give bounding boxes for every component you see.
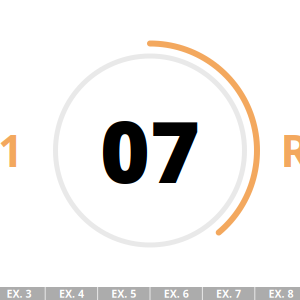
button[interactable]: EX. 5 — [98, 287, 149, 300]
button[interactable]: Previous exercise — [0, 121, 23, 179]
staticText: EX. 4 — [59, 286, 84, 300]
staticText: 07 — [100, 93, 200, 207]
staticText: EX. 8 — [268, 286, 293, 300]
button[interactable]: Next exercise — [280, 121, 300, 179]
staticText: EX. 1 — [0, 121, 23, 179]
staticText: EX. 3 — [6, 286, 31, 300]
staticText: EX. 7 — [216, 286, 241, 300]
button[interactable]: EX. 6 — [150, 287, 202, 300]
button[interactable]: EX. 8 — [255, 287, 300, 300]
staticText: REST — [280, 121, 300, 179]
button[interactable]: Exercise 7, 39 percent complete — [0, 0, 300, 300]
button[interactable]: EX. 4 — [46, 287, 97, 300]
button[interactable]: EX. 3 — [0, 287, 45, 300]
button[interactable]: EX. 7 — [203, 287, 254, 300]
staticText: EX. 5 — [111, 286, 136, 300]
staticText: EX. 6 — [164, 286, 189, 300]
